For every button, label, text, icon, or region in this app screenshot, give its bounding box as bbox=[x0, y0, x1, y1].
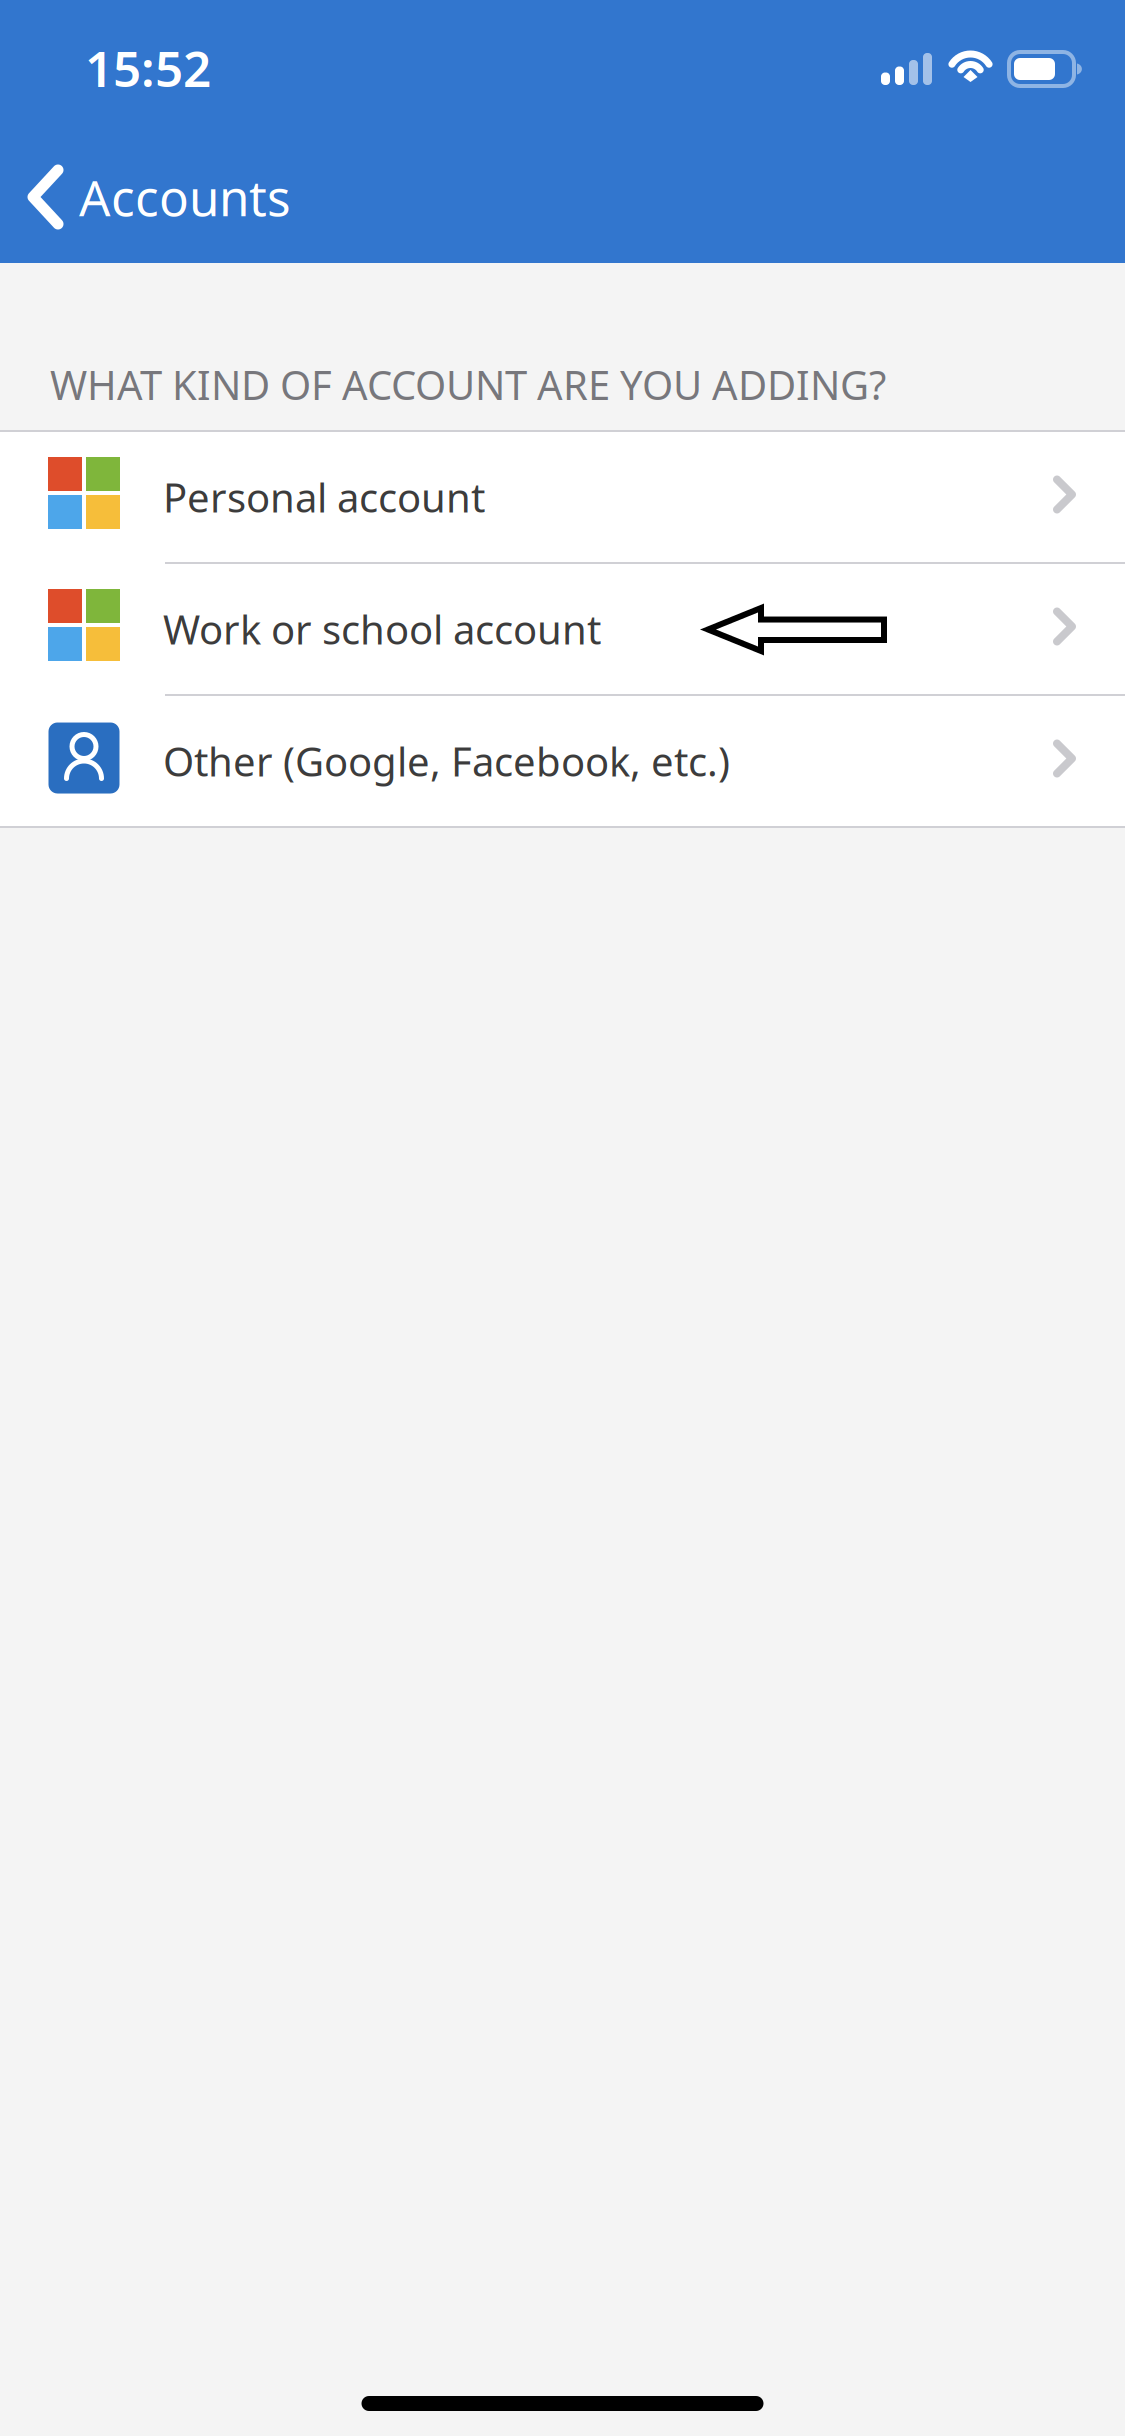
button[interactable]: Accounts bbox=[0, 149, 315, 246]
button[interactable]: Other (Google, Facebook, etc.) bbox=[0, 696, 1125, 826]
staticText: Accounts bbox=[79, 164, 291, 230]
staticText: WHAT KIND OF ACCOUNT ARE YOU ADDING? bbox=[50, 358, 886, 411]
button[interactable]: Personal account bbox=[0, 432, 1125, 562]
staticText: Work or school account bbox=[163, 602, 601, 655]
button[interactable]: Work or school account bbox=[0, 564, 1125, 694]
staticText: Personal account bbox=[163, 470, 485, 523]
staticText: 15:52 bbox=[85, 35, 211, 100]
staticText: Other (Google, Facebook, etc.) bbox=[163, 734, 730, 787]
